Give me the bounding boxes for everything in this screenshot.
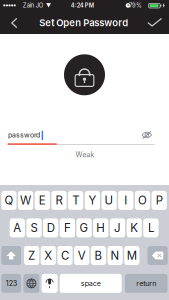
button[interactable]: Done: [142, 11, 168, 34]
staticText: H: [96, 221, 105, 235]
staticText: P: [156, 193, 163, 207]
staticText: V: [78, 249, 86, 262]
button[interactable]: C: [57, 246, 73, 265]
button[interactable]: Q: [1, 191, 16, 210]
button[interactable]: N: [107, 246, 123, 265]
button[interactable]: L: [143, 218, 158, 237]
staticText: E: [39, 193, 46, 207]
button[interactable]: K: [127, 218, 142, 237]
staticText: G: [80, 221, 89, 235]
staticText: N: [111, 249, 120, 262]
button[interactable]: D: [43, 218, 58, 237]
button[interactable]: space: [60, 274, 122, 293]
staticText: R: [55, 193, 62, 207]
staticText: 4:24 PM: [71, 2, 94, 9]
staticText: 123: [6, 279, 17, 288]
staticText: Zain JO: [23, 2, 43, 9]
staticText: 79%: [129, 2, 142, 9]
button[interactable]: W: [18, 191, 33, 210]
staticText: S: [30, 221, 37, 235]
button[interactable]: G: [76, 218, 92, 237]
button[interactable]: J: [110, 218, 125, 237]
button[interactable]: I: [118, 191, 133, 210]
button[interactable]: E: [35, 191, 50, 210]
staticText: M: [127, 249, 137, 262]
staticText: T: [72, 193, 79, 207]
button[interactable]: V: [74, 246, 89, 265]
button[interactable]: U: [101, 191, 117, 210]
button[interactable]: H: [93, 218, 108, 237]
button[interactable]: F: [60, 218, 75, 237]
staticText: J: [114, 221, 121, 235]
staticText: Z: [28, 249, 35, 262]
button[interactable]: Delete: [147, 246, 168, 265]
button[interactable]: P: [152, 191, 167, 210]
staticText: O: [138, 193, 147, 207]
button[interactable]: Shift: [1, 246, 21, 265]
button[interactable]: S: [26, 218, 42, 237]
staticText: K: [130, 221, 138, 235]
button[interactable]: Numbers: [1, 274, 21, 293]
staticText: X: [44, 249, 52, 262]
button[interactable]: R: [51, 191, 67, 210]
button[interactable]: O: [135, 191, 150, 210]
staticText: A: [13, 221, 21, 235]
button[interactable]: Z: [24, 246, 39, 265]
button[interactable]: Dictation: [42, 274, 58, 293]
button[interactable]: X: [41, 246, 56, 265]
staticText: C: [61, 249, 69, 262]
staticText: D: [47, 221, 55, 235]
staticText: password: [8, 131, 40, 139]
button[interactable]: Switch keyboard: [23, 274, 39, 293]
staticText: F: [64, 221, 71, 235]
button[interactable]: A: [10, 218, 25, 237]
staticText: W: [20, 193, 31, 207]
button[interactable]: T: [68, 191, 83, 210]
button[interactable]: Back: [1, 11, 27, 34]
staticText: Q: [4, 193, 13, 207]
staticText: B: [94, 249, 102, 262]
staticText: U: [105, 193, 114, 207]
button[interactable]: return: [125, 274, 167, 293]
staticText: Y: [88, 193, 96, 207]
staticText: space: [81, 279, 101, 288]
button[interactable]: Y: [85, 191, 100, 210]
staticText: Set Open Password: [39, 17, 128, 29]
staticText: Weak: [75, 150, 94, 159]
staticText: L: [148, 221, 154, 235]
button[interactable]: M: [124, 246, 139, 265]
staticText: I: [124, 193, 127, 207]
button[interactable]: Show password: [138, 127, 156, 142]
staticText: return: [136, 279, 156, 288]
button[interactable]: B: [91, 246, 106, 265]
